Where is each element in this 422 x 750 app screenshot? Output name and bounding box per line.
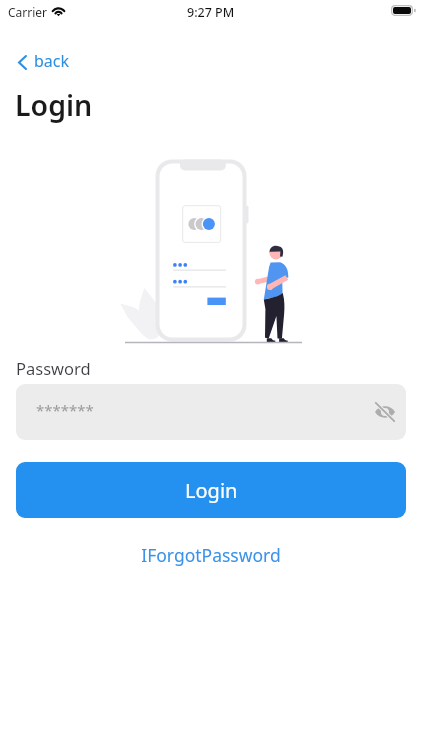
staticText: Password <box>16 357 91 379</box>
button[interactable]: ******* <box>16 384 406 440</box>
button[interactable]: Login <box>16 462 406 518</box>
button[interactable]: back <box>13 46 75 78</box>
staticText: ******* <box>36 400 94 420</box>
button[interactable]: Show password <box>368 395 402 429</box>
staticText: Login <box>185 477 238 504</box>
staticText: back <box>34 50 70 72</box>
button[interactable]: IForgotPassword <box>0 540 422 570</box>
staticText: Carrier <box>8 4 48 20</box>
staticText: Login <box>15 86 93 125</box>
staticText: 9:27 PM <box>187 4 235 21</box>
